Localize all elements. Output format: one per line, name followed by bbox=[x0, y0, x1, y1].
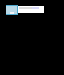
button[interactable] bbox=[18, 6, 44, 13]
button[interactable] bbox=[6, 6, 17, 14]
